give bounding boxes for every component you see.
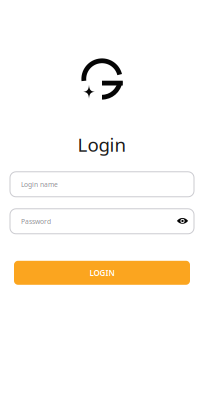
staticText: Login — [77, 132, 126, 157]
staticText: LOGIN — [89, 267, 114, 278]
staticText: Login name — [21, 180, 58, 189]
staticText: Password — [21, 217, 51, 226]
button[interactable]: Show password — [176, 215, 194, 227]
button[interactable]: LOGIN — [14, 261, 190, 285]
